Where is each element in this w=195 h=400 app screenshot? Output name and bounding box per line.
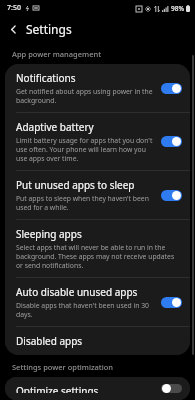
staticText: Optimize settings: [16, 384, 99, 393]
button[interactable]: Notifications toggle: [161, 83, 182, 94]
staticText: 7:50: [7, 3, 21, 13]
staticText: Get notified about apps using power in t…: [16, 87, 155, 105]
button[interactable]: Disabled apps: [5, 327, 190, 355]
staticText: Sleeping apps: [16, 227, 82, 241]
button[interactable]: Sleeping apps: [5, 220, 190, 278]
button[interactable]: Adaptive battery: [5, 113, 190, 171]
button[interactable]: Back: [0, 16, 26, 42]
button[interactable]: Auto disable unused apps: [5, 278, 190, 327]
staticText: Select apps that will never be able to r…: [16, 243, 182, 270]
button[interactable]: Optimize settings toggle: [161, 384, 182, 393]
staticText: Notifications: [16, 71, 76, 85]
button[interactable]: Put unused apps to sleep toggle: [161, 190, 182, 201]
staticText: Put unused apps to sleep: [16, 178, 135, 192]
staticText: Settings power optimization: [12, 362, 114, 372]
staticText: Settings: [26, 21, 72, 37]
button[interactable]: Put unused apps to sleep: [5, 171, 190, 220]
button[interactable]: Auto disable unused apps toggle: [161, 297, 182, 308]
staticText: 98%: [171, 4, 184, 13]
staticText: Limit battery usage for apps that you do…: [16, 136, 155, 163]
button[interactable]: Notifications: [5, 64, 190, 113]
staticText: Disable apps that haven't been used in 3…: [16, 301, 155, 319]
staticText: Put apps to sleep when they haven't been…: [16, 194, 155, 212]
staticText: Disabled apps: [16, 334, 83, 348]
staticText: App power management: [12, 49, 102, 59]
staticText: Auto disable unused apps: [16, 285, 138, 299]
button[interactable]: Optimize settings: [5, 377, 190, 400]
staticText: Adaptive battery: [16, 120, 94, 134]
button[interactable]: Adaptive battery toggle: [161, 136, 182, 147]
